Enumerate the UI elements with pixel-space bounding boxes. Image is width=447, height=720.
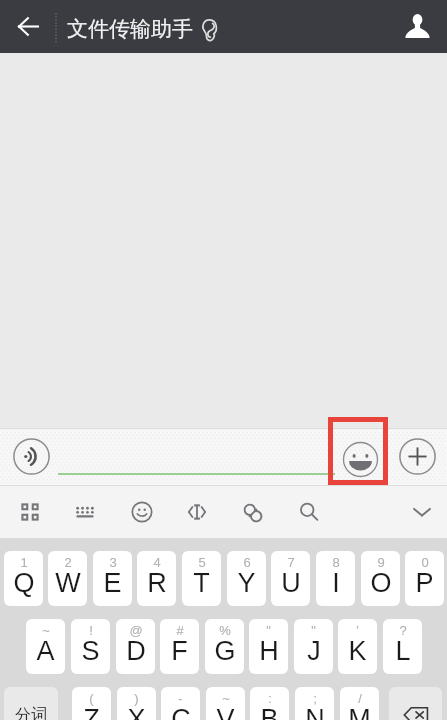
staticText: L bbox=[395, 636, 411, 666]
button[interactable]: ) bbox=[117, 687, 156, 720]
staticText: D bbox=[126, 636, 146, 666]
staticText: X bbox=[127, 704, 146, 720]
button[interactable]: Attach bbox=[231, 491, 275, 535]
button[interactable]: 7 bbox=[271, 551, 310, 606]
staticText: - bbox=[178, 691, 183, 706]
button[interactable]: More options bbox=[399, 438, 436, 475]
staticText: @ bbox=[129, 623, 143, 638]
staticText: I bbox=[332, 568, 340, 598]
button[interactable]: ! bbox=[71, 619, 110, 674]
button[interactable]: 3 bbox=[93, 551, 132, 606]
button[interactable]: Back bbox=[0, 0, 54, 53]
staticText: U bbox=[281, 568, 301, 598]
staticText: 6 bbox=[243, 555, 251, 570]
button[interactable]: @ bbox=[116, 619, 155, 674]
staticText: " bbox=[311, 623, 316, 638]
button[interactable]: ~ bbox=[206, 687, 245, 720]
staticText: 4 bbox=[153, 555, 161, 570]
staticText: ! bbox=[89, 623, 93, 638]
button[interactable]: 9 bbox=[361, 551, 400, 606]
staticText: ? bbox=[399, 623, 407, 638]
button[interactable]: Keyboard bbox=[63, 490, 107, 534]
staticText: 5 bbox=[198, 555, 206, 570]
staticText: B bbox=[260, 704, 279, 720]
staticText: : bbox=[268, 691, 272, 706]
button[interactable]: ? bbox=[383, 619, 422, 674]
staticText: / bbox=[358, 691, 362, 706]
button[interactable]: 1 bbox=[4, 551, 43, 606]
button[interactable]: # bbox=[160, 619, 199, 674]
button[interactable]: 6 bbox=[227, 551, 266, 606]
staticText: M bbox=[348, 704, 371, 720]
button[interactable]: Profile bbox=[387, 0, 447, 53]
button[interactable]: ' bbox=[338, 619, 377, 674]
staticText: ; bbox=[313, 691, 317, 706]
button[interactable]: ~ bbox=[26, 619, 65, 674]
button[interactable]: 2 bbox=[48, 551, 87, 606]
staticText: ' bbox=[356, 623, 359, 638]
staticText: E bbox=[103, 568, 122, 598]
staticText: 0 bbox=[421, 555, 429, 570]
button[interactable]: Backspace bbox=[389, 687, 442, 720]
staticText: O bbox=[370, 568, 392, 598]
button[interactable]: ( bbox=[72, 687, 111, 720]
staticText: F bbox=[171, 636, 188, 666]
staticText: 1 bbox=[20, 555, 28, 570]
button[interactable]: Hide keyboard bbox=[400, 490, 444, 534]
staticText: N bbox=[305, 704, 325, 720]
staticText: W bbox=[55, 568, 81, 598]
button[interactable]: Voice input bbox=[13, 438, 50, 475]
button[interactable]: ; bbox=[295, 687, 334, 720]
staticText: 分词 bbox=[15, 705, 47, 720]
button[interactable]: 分词 bbox=[4, 687, 58, 720]
staticText: Y bbox=[237, 568, 256, 598]
button[interactable]: " bbox=[294, 619, 333, 674]
button[interactable]: % bbox=[205, 619, 244, 674]
staticText: Z bbox=[83, 704, 100, 720]
staticText: ) bbox=[134, 691, 139, 706]
button[interactable]: Apps bbox=[8, 490, 52, 534]
button[interactable]: : bbox=[250, 687, 289, 720]
button[interactable]: 5 bbox=[182, 551, 221, 606]
staticText: % bbox=[219, 623, 231, 638]
staticText: 3 bbox=[109, 555, 117, 570]
staticText: J bbox=[307, 636, 321, 666]
staticText: 文件传输助手 bbox=[67, 16, 193, 42]
staticText: " bbox=[266, 623, 271, 638]
button[interactable]: / bbox=[340, 687, 379, 720]
staticText: K bbox=[348, 636, 367, 666]
button[interactable]: 0 bbox=[405, 551, 444, 606]
staticText: C bbox=[171, 704, 191, 720]
staticText: Q bbox=[13, 568, 35, 598]
staticText: H bbox=[259, 636, 279, 666]
staticText: P bbox=[415, 568, 434, 598]
staticText: 9 bbox=[377, 555, 385, 570]
button[interactable]: Text cursor bbox=[175, 490, 219, 534]
button[interactable]: Emoji bbox=[120, 490, 164, 534]
staticText: ~ bbox=[42, 623, 50, 638]
staticText: S bbox=[81, 636, 100, 666]
button[interactable]: 4 bbox=[137, 551, 176, 606]
staticText: ( bbox=[89, 691, 94, 706]
staticText: G bbox=[214, 636, 236, 666]
button[interactable]: Search bbox=[287, 490, 331, 534]
staticText: 7 bbox=[287, 555, 295, 570]
staticText: # bbox=[176, 623, 184, 638]
staticText: 8 bbox=[332, 555, 340, 570]
button[interactable]: - bbox=[161, 687, 200, 720]
staticText: R bbox=[147, 568, 167, 598]
staticText: V bbox=[216, 704, 235, 720]
button[interactable]: Emoji bbox=[328, 417, 388, 485]
staticText: A bbox=[36, 636, 55, 666]
staticText: T bbox=[193, 568, 210, 598]
button[interactable]: " bbox=[249, 619, 288, 674]
staticText: 2 bbox=[64, 555, 72, 570]
staticText: ~ bbox=[222, 691, 230, 706]
button[interactable]: 8 bbox=[316, 551, 355, 606]
